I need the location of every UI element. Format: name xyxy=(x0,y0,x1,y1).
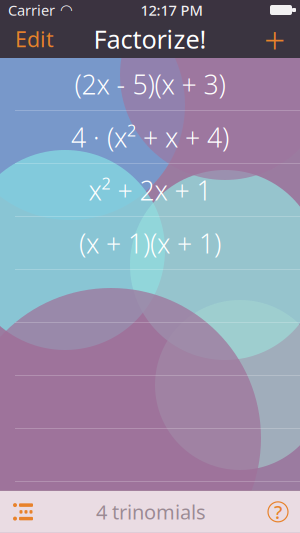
button[interactable]: Sort xyxy=(0,491,46,533)
staticText: x² + 2x + 1 xyxy=(88,172,211,208)
staticText: 4 · (x² + x + 4) xyxy=(71,119,229,155)
button[interactable]: 4 · (x² + x + 4) xyxy=(0,111,300,164)
button[interactable]: Help xyxy=(256,491,300,533)
staticText: Carrier xyxy=(8,0,55,20)
staticText: ? xyxy=(274,499,282,524)
staticText: Edit xyxy=(15,25,54,53)
button[interactable]: x² + 2x + 1 xyxy=(0,164,300,217)
button[interactable]: (x + 1)(x + 1) xyxy=(0,217,300,270)
staticText: (x + 1)(x + 1) xyxy=(79,225,221,261)
button[interactable]: Add xyxy=(254,21,295,57)
button[interactable]: Edit xyxy=(5,21,64,57)
button[interactable]: (2x - 5)(x + 3) xyxy=(0,58,300,111)
staticText: 12:17 PM xyxy=(140,0,202,20)
staticText: ◠ xyxy=(60,2,73,18)
staticText: Factorize! xyxy=(93,22,206,56)
staticText: + xyxy=(264,14,285,64)
staticText: 4 trinomials xyxy=(96,499,206,525)
staticText: (2x - 5)(x + 3) xyxy=(74,66,225,102)
